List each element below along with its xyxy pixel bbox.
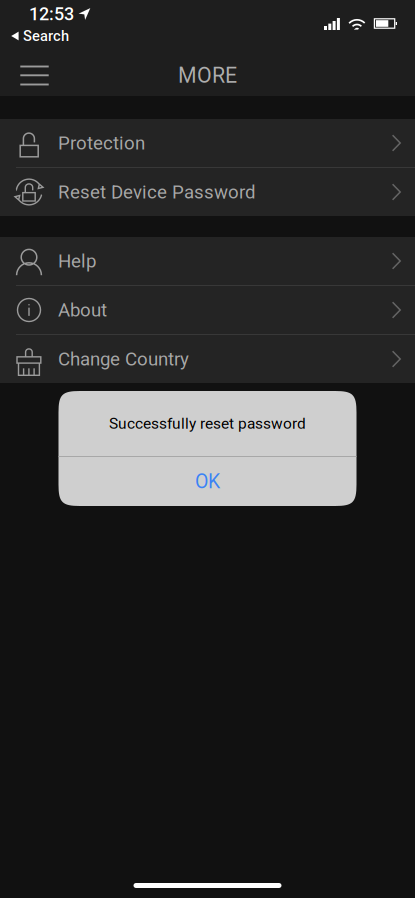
button[interactable]: Change Country [0, 335, 415, 383]
staticText: 12:53 [29, 3, 74, 25]
staticText: Protection [58, 132, 145, 154]
button[interactable]: About [0, 286, 415, 334]
staticText: Change Country [58, 348, 189, 370]
staticText: OK [195, 470, 220, 493]
staticText: Successfully reset password [109, 414, 306, 432]
button[interactable]: Reset Device Password [0, 168, 415, 216]
staticText: Help [58, 250, 96, 272]
staticText: About [58, 299, 107, 321]
staticText: Reset Device Password [58, 181, 256, 203]
button[interactable]: OK [58, 457, 356, 506]
button[interactable]: Menu [0, 55, 69, 96]
staticText: Search [23, 27, 69, 45]
button[interactable]: Help [0, 237, 415, 285]
button[interactable]: Protection [0, 119, 415, 167]
staticText: MORE [178, 63, 237, 88]
